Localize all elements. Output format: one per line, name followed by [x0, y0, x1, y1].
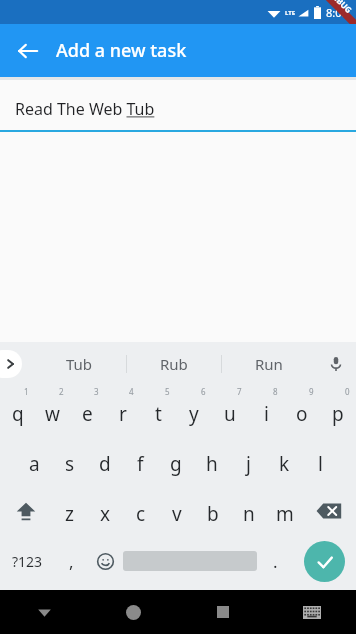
staticText: 3 — [94, 386, 99, 397]
button[interactable]: Back — [0, 24, 56, 77]
button[interactable]: f — [122, 436, 158, 486]
staticText: 2 — [59, 386, 64, 397]
button[interactable]: 3 — [70, 386, 105, 436]
button[interactable]: 2 — [35, 386, 70, 436]
staticText: Run — [255, 354, 283, 374]
staticText: g — [170, 451, 182, 477]
staticText: Tub — [66, 354, 93, 374]
staticText: q — [12, 401, 24, 427]
button[interactable]: 8 — [248, 386, 284, 436]
staticText: e — [82, 401, 93, 427]
staticText: z — [65, 501, 74, 527]
button[interactable]: s — [52, 436, 87, 486]
button[interactable]: 6 — [176, 386, 212, 436]
button[interactable]: Read The Web Tub — [15, 98, 341, 120]
staticText: m — [276, 501, 294, 527]
staticText: 1 — [24, 386, 29, 397]
button[interactable]: Switch keyboard — [267, 590, 356, 634]
staticText: y — [189, 401, 199, 427]
staticText: Rub — [160, 354, 188, 374]
button[interactable]: c — [123, 486, 159, 536]
staticText: x — [100, 501, 111, 527]
staticText: ?123 — [12, 552, 43, 571]
button[interactable]: a — [17, 436, 52, 486]
button[interactable]: l — [302, 436, 338, 486]
staticText: u — [224, 401, 236, 427]
button[interactable]: Space — [123, 536, 257, 586]
button[interactable]: Emoji — [87, 536, 123, 586]
staticText: Read The Web Tub — [15, 98, 155, 120]
button[interactable]: m — [267, 486, 303, 536]
button[interactable]: . — [257, 536, 293, 586]
staticText: a — [29, 451, 40, 477]
staticText: r — [119, 401, 127, 427]
button[interactable]: v — [159, 486, 195, 536]
staticText: Add a new task — [56, 38, 187, 63]
button[interactable]: 5 — [140, 386, 176, 436]
button[interactable]: ?123 — [0, 536, 55, 586]
staticText: 5 — [165, 386, 170, 397]
button[interactable]: 7 — [212, 386, 248, 436]
staticText: n — [243, 501, 255, 527]
button[interactable]: Rub — [127, 342, 221, 386]
button[interactable]: Expand suggestions — [0, 350, 22, 378]
button[interactable]: g — [158, 436, 194, 486]
staticText: 0 — [345, 386, 350, 397]
staticText: LTE — [285, 9, 296, 17]
button[interactable]: d — [87, 436, 122, 486]
staticText: . — [273, 550, 278, 573]
button[interactable]: 1 — [0, 386, 35, 436]
staticText: 8 — [273, 386, 278, 397]
button[interactable]: Tub — [32, 342, 126, 386]
button[interactable]: b — [195, 486, 231, 536]
staticText: i — [264, 401, 269, 427]
button[interactable]: Home — [89, 590, 178, 634]
staticText: b — [207, 501, 219, 527]
staticText: p — [332, 401, 344, 427]
staticText: 7 — [237, 386, 242, 397]
staticText: 8:00 — [326, 5, 348, 20]
button[interactable]: Run — [222, 342, 316, 386]
staticText: d — [99, 451, 111, 477]
button[interactable]: x — [87, 486, 123, 536]
staticText: h — [206, 451, 218, 477]
button[interactable]: Recents — [178, 590, 267, 634]
staticText: s — [65, 451, 75, 477]
button[interactable]: , — [55, 536, 87, 586]
button[interactable]: Shift — [0, 486, 52, 536]
button[interactable]: Done — [293, 536, 356, 586]
button[interactable]: Backspace — [303, 486, 356, 536]
staticText: 4 — [129, 386, 134, 397]
staticText: 6 — [201, 386, 206, 397]
button[interactable]: Voice input — [316, 342, 356, 386]
staticText: w — [45, 401, 60, 427]
staticText: k — [279, 451, 290, 477]
button[interactable]: Hide keyboard — [0, 590, 89, 634]
button[interactable]: n — [231, 486, 267, 536]
button[interactable]: 4 — [105, 386, 140, 436]
staticText: v — [172, 501, 182, 527]
button[interactable]: 0 — [320, 386, 356, 436]
button[interactable]: k — [266, 436, 302, 486]
staticText: DEBUG — [327, 0, 355, 15]
staticText: j — [246, 451, 251, 477]
staticText: o — [296, 401, 308, 427]
staticText: t — [155, 401, 162, 427]
staticText: c — [136, 501, 146, 527]
staticText: f — [137, 451, 144, 477]
staticText: , — [69, 550, 74, 573]
button[interactable]: j — [230, 436, 266, 486]
button[interactable]: h — [194, 436, 230, 486]
button[interactable]: z — [52, 486, 87, 536]
staticText: l — [318, 451, 323, 477]
button[interactable]: 9 — [284, 386, 320, 436]
staticText: 9 — [309, 386, 314, 397]
